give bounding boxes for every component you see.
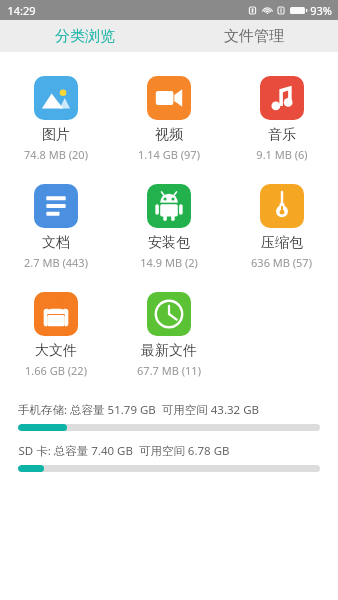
button[interactable]: 视频 [112, 74, 225, 164]
button[interactable]: 文档 [0, 182, 112, 272]
button[interactable]: 文件管理 [169, 20, 338, 52]
button[interactable]: 大文件 [0, 290, 112, 380]
staticText: SD 卡: 总容量 7.40 GB 可用空间 6.78 GB [18, 443, 230, 459]
other: 压缩包 [260, 184, 304, 228]
button[interactable]: 图片 [0, 74, 112, 164]
staticText: 2.7 MB (443) [24, 255, 88, 270]
staticText: 压缩包 [261, 234, 303, 252]
other: 图片 [34, 76, 78, 120]
button[interactable]: 分类浏览 [0, 20, 169, 52]
other: 最新文件 [147, 292, 191, 336]
button[interactable]: 安装包 [112, 182, 225, 272]
button[interactable]: 压缩包 [225, 182, 338, 272]
staticText: 1.66 GB (22) [25, 363, 87, 378]
staticText: 67.7 MB (11) [137, 363, 201, 378]
staticText: 图片 [42, 126, 70, 144]
staticText: 最新文件 [141, 342, 197, 360]
staticText: 视频 [155, 126, 183, 144]
staticText: 大文件 [35, 342, 77, 360]
staticText: 14:29 [7, 3, 36, 18]
staticText: 1.14 GB (97) [138, 147, 200, 162]
staticText: 9.1 MB (6) [256, 147, 308, 162]
button[interactable]: 最新文件 [112, 290, 225, 380]
staticText: 分类浏览 [55, 27, 115, 46]
other: 视频 [147, 76, 191, 120]
staticText: 文件管理 [224, 27, 284, 46]
staticText: 74.8 MB (20) [24, 147, 88, 162]
staticText: 636 MB (57) [251, 255, 312, 270]
other: 音乐 [260, 76, 304, 120]
staticText: 音乐 [268, 126, 296, 144]
staticText: 手机存储: 总容量 51.79 GB 可用空间 43.32 GB [18, 402, 259, 418]
staticText: 安装包 [148, 234, 190, 252]
other: 大文件 [34, 292, 78, 336]
staticText: 14.9 MB (2) [140, 255, 198, 270]
staticText: 93% [310, 3, 332, 18]
other: 安装包 [147, 184, 191, 228]
staticText: 文档 [42, 234, 70, 252]
other: 文档 [34, 184, 78, 228]
button[interactable]: 音乐 [225, 74, 338, 164]
